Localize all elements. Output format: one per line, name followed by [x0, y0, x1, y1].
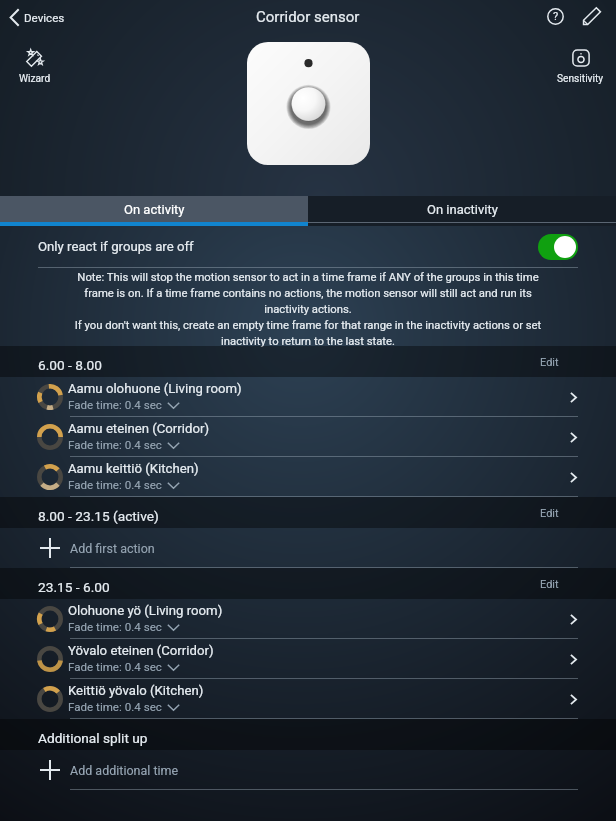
- button[interactable]: Keittiö yövalo (Kitchen): [0, 679, 616, 719]
- staticText: Add additional time: [70, 763, 179, 778]
- button[interactable]: Sensitivity: [551, 47, 610, 87]
- button[interactable]: Edit: [530, 346, 616, 373]
- other: Open action: [570, 654, 577, 665]
- button[interactable]: Edit: [530, 568, 616, 595]
- button[interactable]: On inactivity: [308, 196, 616, 222]
- button[interactable]: Olohuone yö (Living room): [0, 599, 616, 639]
- other: Open action: [570, 392, 577, 403]
- button[interactable]: Add first action: [0, 528, 616, 568]
- staticText: 6.00 - 8.00: [38, 357, 102, 373]
- button[interactable]: On activity: [0, 196, 308, 222]
- staticText: Aamu keittiö (Kitchen): [68, 461, 199, 476]
- staticText: Fade time: 0.4 sec: [68, 478, 162, 492]
- staticText: On activity: [124, 202, 185, 217]
- staticText: ?: [553, 10, 559, 23]
- staticText: Additional split up: [38, 730, 148, 746]
- button[interactable]: Edit: [581, 5, 603, 27]
- staticText: Fade time: 0.4 sec: [68, 398, 162, 412]
- button[interactable]: Add additional time: [0, 750, 616, 790]
- button[interactable]: Yövalo eteinen (Corridor): [0, 639, 616, 679]
- staticText: 8.00 - 23.15 (active): [38, 508, 159, 524]
- staticText: 23.15 - 6.00: [38, 579, 110, 595]
- staticText: Fade time: 0.4 sec: [68, 438, 162, 452]
- staticText: Aamu olohuone (Living room): [68, 381, 242, 396]
- button[interactable]: Edit: [530, 497, 616, 524]
- staticText: Aamu eteinen (Corridor): [68, 421, 209, 436]
- staticText: Fade time: 0.4 sec: [68, 660, 162, 674]
- other: Open action: [570, 432, 577, 443]
- other: Open action: [570, 472, 577, 483]
- staticText: Keittiö yövalo (Kitchen): [68, 683, 204, 698]
- staticText: Fade time: 0.4 sec: [68, 620, 162, 634]
- button[interactable]: Only react if groups are off: [0, 226, 616, 267]
- other: Open action: [570, 614, 577, 625]
- button[interactable]: Aamu keittiö (Kitchen): [0, 457, 616, 497]
- button[interactable]: Aamu eteinen (Corridor): [0, 417, 616, 457]
- staticText: Add first action: [70, 541, 155, 556]
- button[interactable]: Wizard: [13, 47, 57, 87]
- staticText: Wizard: [19, 73, 51, 85]
- staticText: Fade time: 0.4 sec: [68, 700, 162, 714]
- staticText: Only react if groups are off: [38, 239, 194, 254]
- other: Open action: [570, 694, 577, 705]
- button[interactable]: Aamu olohuone (Living room): [0, 377, 616, 417]
- staticText: On inactivity: [427, 202, 498, 217]
- staticText: Note: This will stop the motion sensor t…: [72, 271, 544, 348]
- staticText: Yövalo eteinen (Corridor): [68, 643, 214, 658]
- button[interactable]: Back to Devices: [7, 6, 68, 29]
- staticText: Corridor sensor: [256, 8, 360, 26]
- staticText: Sensitivity: [557, 73, 604, 85]
- staticText: Devices: [24, 11, 65, 25]
- staticText: Olohuone yö (Living room): [68, 603, 223, 618]
- button[interactable]: Help: [545, 6, 566, 27]
